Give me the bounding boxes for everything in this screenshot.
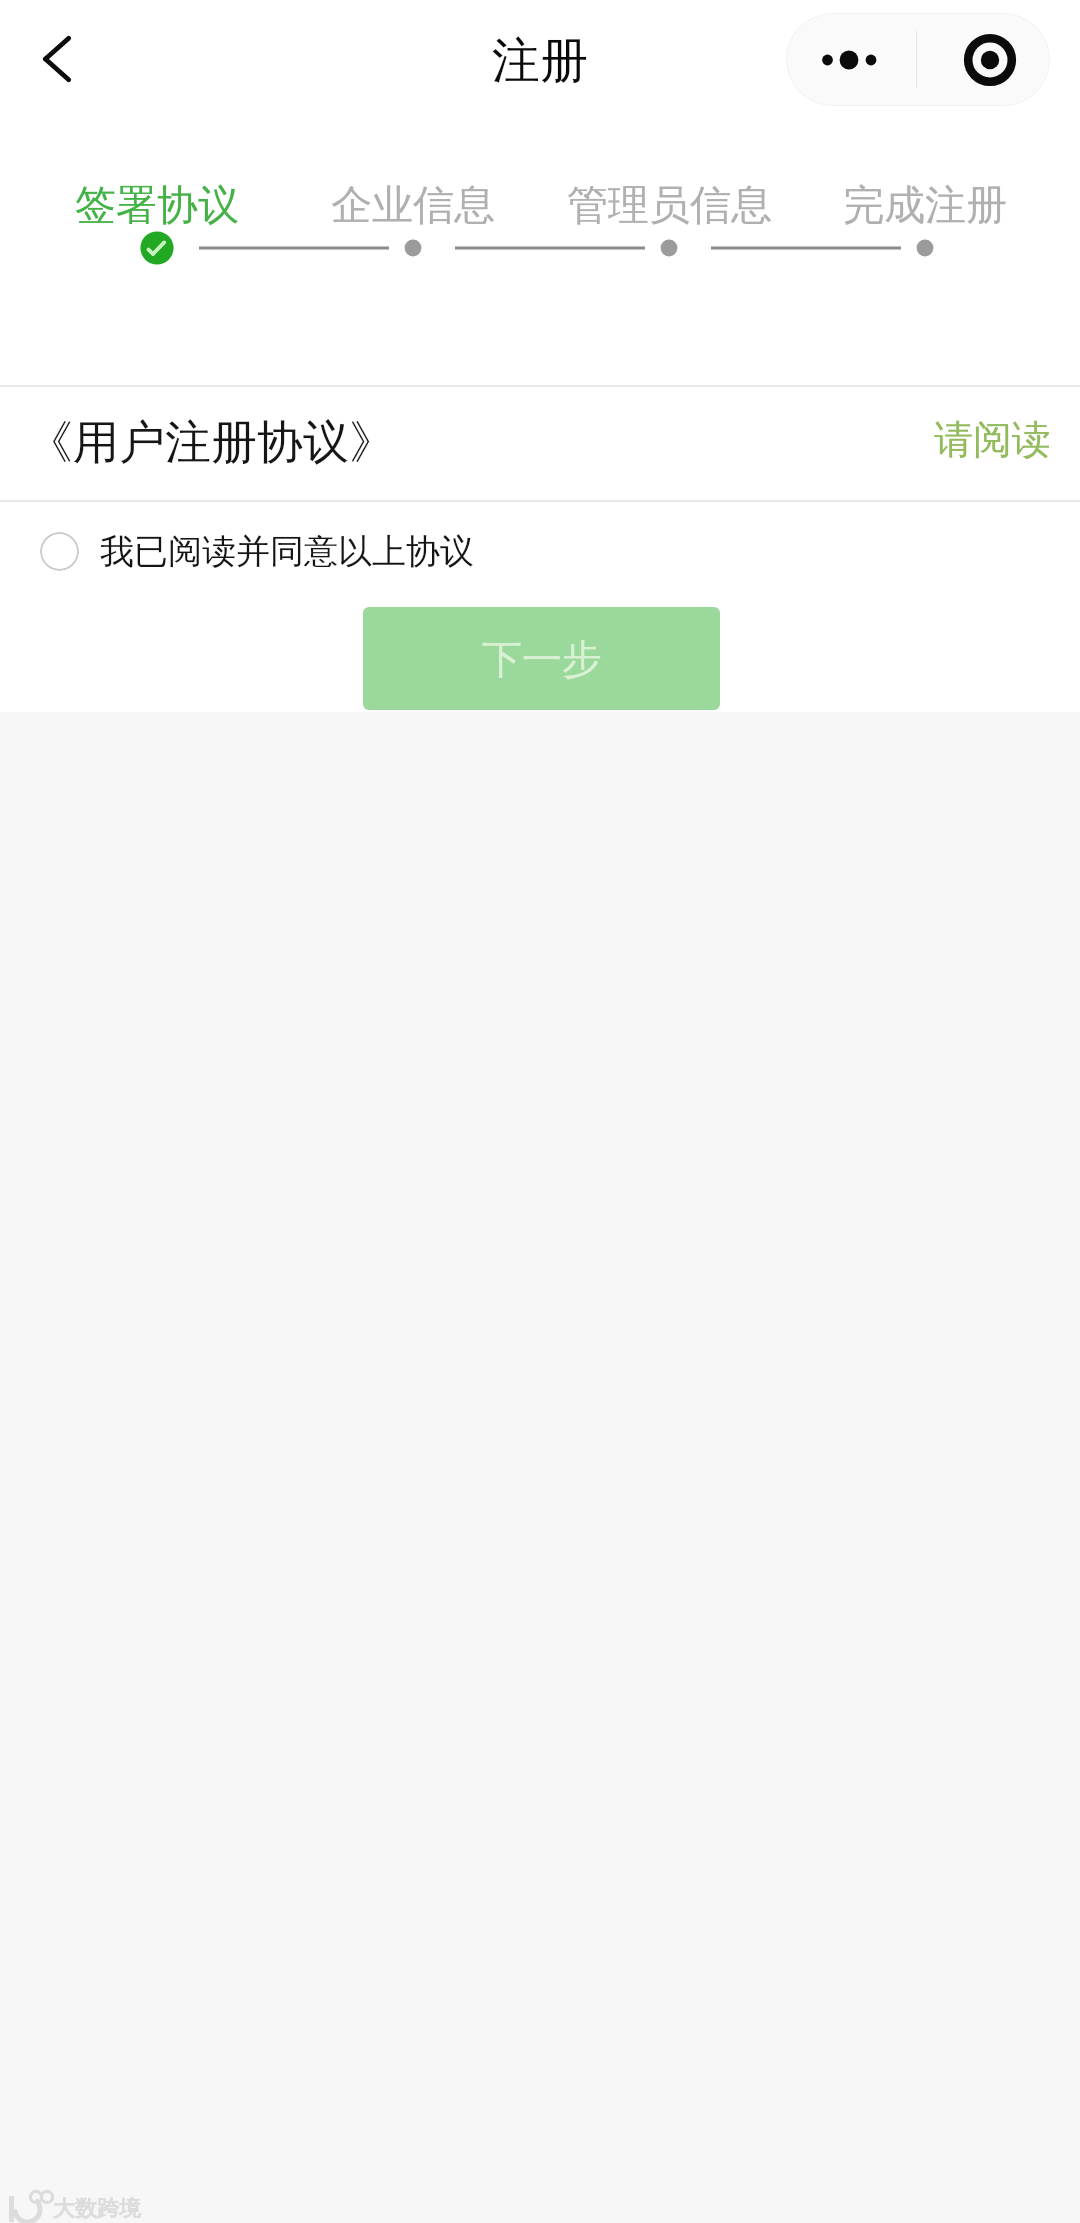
- staticText: 大数跨境: [53, 2195, 141, 2223]
- button[interactable]: 我已阅读并同意以上协议: [0, 501, 1080, 601]
- staticText: 我已阅读并同意以上协议: [100, 530, 474, 573]
- button[interactable]: 下一步: [363, 607, 720, 710]
- staticText: 管理员信息: [567, 180, 772, 232]
- button[interactable]: 管理员信息: [549, 168, 789, 278]
- button[interactable]: More options: [786, 13, 916, 106]
- staticText: 《用户注册协议》: [27, 414, 395, 472]
- staticText: 注册: [492, 31, 588, 91]
- staticText: 完成注册: [843, 180, 1007, 232]
- staticText: 下一步: [482, 634, 602, 684]
- button[interactable]: 企业信息: [293, 168, 533, 278]
- staticText: 签署协议: [75, 180, 239, 232]
- staticText: 请阅读: [934, 415, 1051, 464]
- staticText: 企业信息: [331, 180, 495, 232]
- button[interactable]: Close mini program: [917, 13, 1050, 106]
- button[interactable]: 《用户注册协议》: [0, 386, 1080, 500]
- button[interactable]: 签署协议: [37, 168, 277, 278]
- button[interactable]: 完成注册: [805, 168, 1045, 278]
- button[interactable]: Back: [14, 16, 100, 102]
